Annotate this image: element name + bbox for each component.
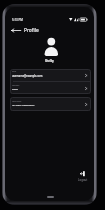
button[interactable]: Back xyxy=(8,24,24,36)
button[interactable]: Email xyxy=(10,69,91,82)
staticText: username@example.com xyxy=(12,74,43,77)
staticText: Email xyxy=(12,70,17,72)
staticText: Shelby xyxy=(45,59,54,63)
button[interactable]: Password xyxy=(10,82,91,95)
button[interactable]: Subscription xyxy=(10,97,91,111)
staticText: Password xyxy=(12,84,20,86)
staticText: Subscription xyxy=(12,100,22,102)
staticText: •••••• xyxy=(12,88,18,91)
staticText: 5:13 PM xyxy=(12,18,23,22)
staticText: No active subscription xyxy=(12,104,35,107)
staticText: Profile xyxy=(24,27,39,34)
staticText: Logout xyxy=(78,178,88,182)
button[interactable]: Logout xyxy=(75,171,90,182)
